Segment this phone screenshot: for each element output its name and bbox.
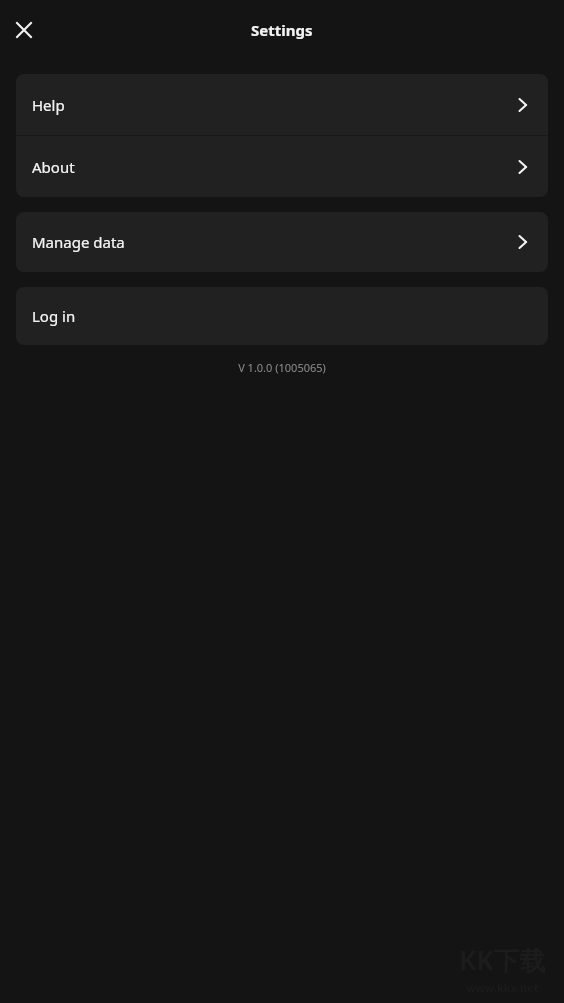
button[interactable]: Help — [16, 74, 548, 135]
staticText: Help — [32, 95, 65, 115]
staticText: About — [32, 157, 75, 177]
staticText: Settings — [251, 20, 313, 40]
button[interactable]: Log in — [16, 287, 548, 345]
button[interactable]: Manage data — [16, 212, 548, 272]
staticText: Manage data — [32, 232, 125, 252]
staticText: KK下载 — [459, 942, 546, 978]
button[interactable]: About — [16, 136, 548, 197]
button[interactable]: Close — [13, 19, 35, 41]
staticText: V 1.0.0 (1005065) — [0, 360, 564, 375]
staticText: Log in — [32, 306, 76, 326]
